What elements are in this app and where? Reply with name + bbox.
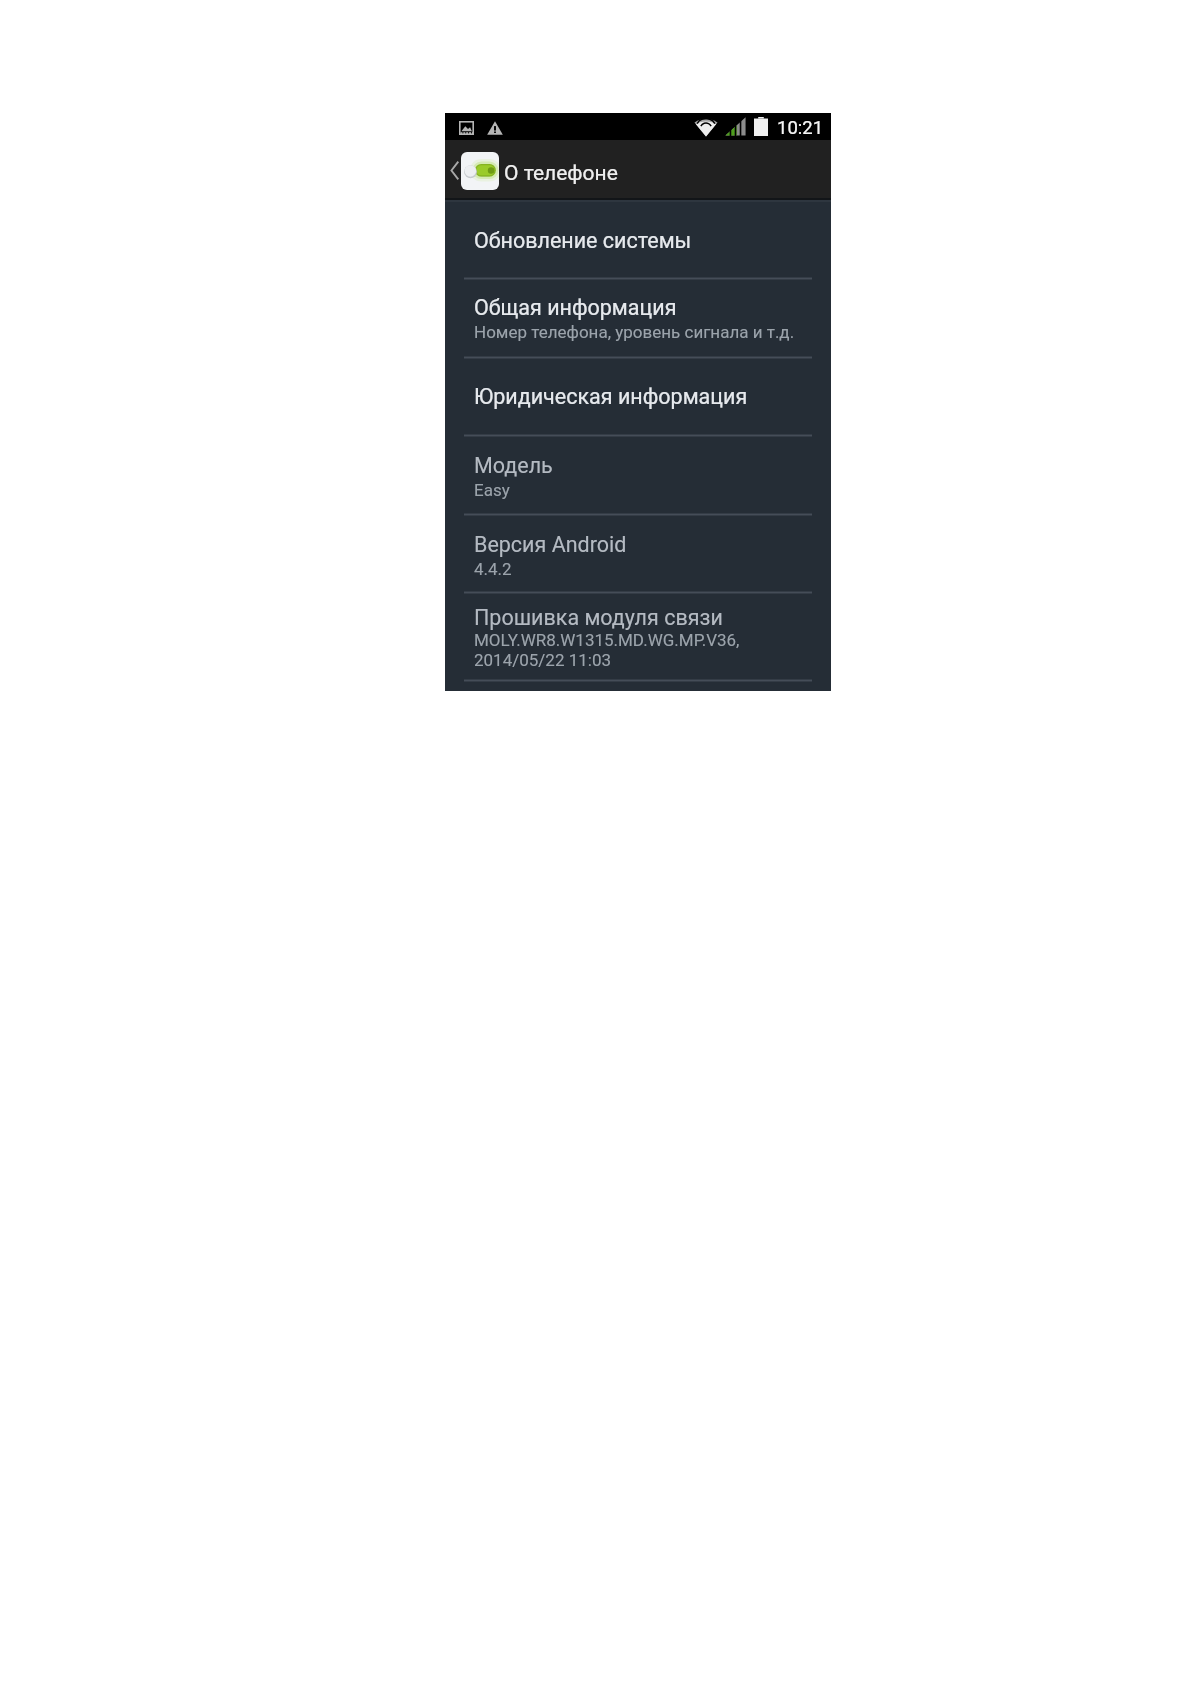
button[interactable]: Модель [445,435,831,514]
staticText: Юридическая информация [474,384,748,409]
button[interactable]: Общая информация [445,278,831,357]
staticText: Общая информация [474,295,677,320]
staticText: Easy [474,480,510,500]
staticText: Номер телефона, уровень сигнала и т.д. [474,322,795,342]
staticText: Прошивка модуля связи [474,605,723,630]
button[interactable]: Navigate up to Settings [445,140,606,200]
staticText: 2014/05/22 11:03 [474,650,612,670]
button[interactable]: Версия Android [445,514,831,592]
staticText: 10:21 [777,117,824,139]
staticText: О телефоне [504,161,618,186]
staticText: MOLY.WR8.W1315.MD.WG.MP.V36, [474,630,740,650]
staticText: Версия Android [474,532,627,557]
staticText: 4.4.2 [474,559,512,579]
button[interactable]: Юридическая информация [445,357,831,435]
button[interactable]: Обновление системы [445,200,831,278]
button[interactable]: Прошивка модуля связи [445,592,831,680]
staticText: Обновление системы [474,228,692,253]
staticText: Модель [474,453,553,478]
